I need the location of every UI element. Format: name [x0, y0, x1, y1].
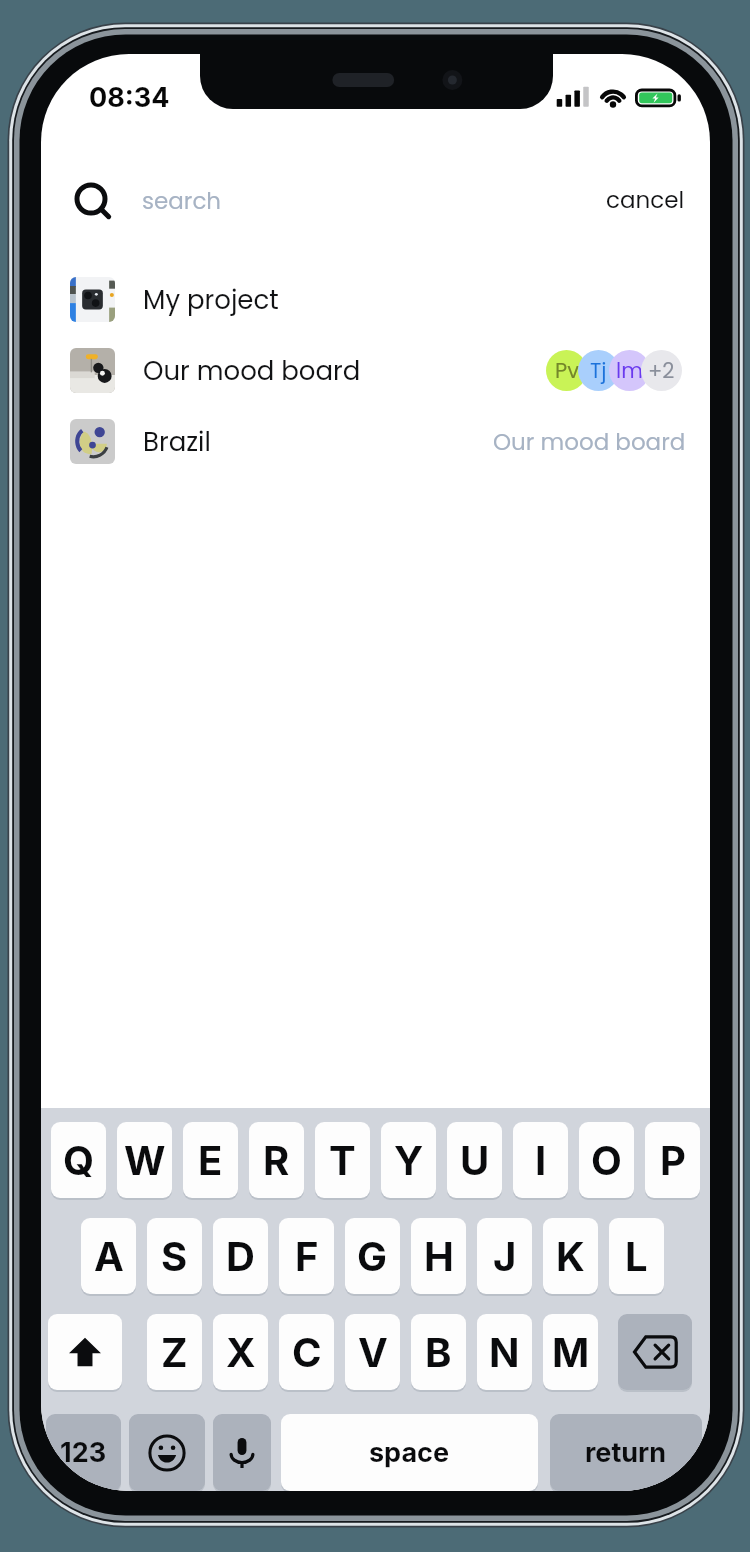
staticText: P: [660, 1136, 686, 1184]
button[interactable]: Dictation: [213, 1414, 271, 1491]
staticText: Y: [394, 1136, 424, 1184]
button[interactable]: Our mood board: [41, 335, 710, 406]
staticText: C: [292, 1328, 322, 1376]
staticText: G: [357, 1232, 388, 1280]
staticText: A: [94, 1232, 124, 1280]
button[interactable]: Tj: [578, 350, 619, 391]
button[interactable]: F: [279, 1218, 334, 1294]
button[interactable]: P: [645, 1122, 700, 1198]
button[interactable]: 123: [46, 1414, 121, 1491]
button[interactable]: Z: [147, 1314, 202, 1390]
staticText: W: [124, 1136, 166, 1184]
staticText: X: [226, 1328, 256, 1376]
button[interactable]: Search: [69, 178, 115, 224]
staticText: Our mood board: [493, 426, 686, 458]
staticText: Brazil: [143, 424, 211, 460]
staticText: V: [358, 1328, 388, 1376]
button[interactable]: V: [345, 1314, 400, 1390]
staticText: Q: [63, 1136, 95, 1184]
button[interactable]: R: [249, 1122, 304, 1198]
button[interactable]: E: [183, 1122, 238, 1198]
staticText: search: [142, 185, 222, 217]
button[interactable]: space: [281, 1414, 538, 1491]
button[interactable]: W: [117, 1122, 172, 1198]
button[interactable]: +2: [641, 350, 682, 391]
staticText: Tj: [590, 356, 607, 385]
staticText: M: [552, 1328, 590, 1376]
staticText: H: [424, 1232, 454, 1280]
button[interactable]: A: [81, 1218, 136, 1294]
button[interactable]: K: [543, 1218, 598, 1294]
button[interactable]: O: [579, 1122, 634, 1198]
button[interactable]: N: [477, 1314, 532, 1390]
button[interactable]: My project: [41, 264, 710, 335]
staticText: I: [535, 1136, 547, 1184]
button[interactable]: B: [411, 1314, 466, 1390]
staticText: E: [198, 1136, 223, 1184]
staticText: L: [625, 1232, 648, 1280]
staticText: cancel: [606, 184, 685, 216]
staticText: return: [585, 1436, 667, 1469]
staticText: 08:34: [89, 81, 170, 113]
staticText: +2: [648, 356, 675, 385]
button[interactable]: T: [315, 1122, 370, 1198]
staticText: F: [295, 1232, 319, 1280]
button[interactable]: G: [345, 1218, 400, 1294]
staticText: My project: [143, 282, 279, 318]
staticText: Our mood board: [143, 353, 361, 389]
staticText: S: [161, 1232, 188, 1280]
button[interactable]: Backspace: [618, 1314, 692, 1390]
button[interactable]: M: [543, 1314, 598, 1390]
button[interactable]: I: [513, 1122, 568, 1198]
button[interactable]: X: [213, 1314, 268, 1390]
button[interactable]: Emoji: [129, 1414, 205, 1491]
staticText: lm: [616, 356, 643, 385]
button[interactable]: lm: [609, 350, 650, 391]
staticText: R: [263, 1136, 290, 1184]
button[interactable]: cancel: [603, 172, 687, 228]
button[interactable]: S: [147, 1218, 202, 1294]
staticText: Z: [161, 1328, 188, 1376]
button[interactable]: return: [550, 1414, 702, 1491]
staticText: space: [369, 1436, 450, 1469]
staticText: Pv: [555, 356, 579, 385]
staticText: 123: [60, 1436, 107, 1469]
staticText: O: [591, 1136, 622, 1184]
button[interactable]: U: [447, 1122, 502, 1198]
button[interactable]: D: [213, 1218, 268, 1294]
staticText: J: [493, 1232, 517, 1280]
staticText: D: [226, 1232, 255, 1280]
button[interactable]: Q: [51, 1122, 106, 1198]
staticText: U: [460, 1136, 490, 1184]
staticText: T: [329, 1136, 356, 1184]
button[interactable]: J: [477, 1218, 532, 1294]
button[interactable]: L: [609, 1218, 664, 1294]
button[interactable]: Shift: [48, 1314, 122, 1390]
button[interactable]: H: [411, 1218, 466, 1294]
button[interactable]: Brazil: [41, 406, 710, 477]
button[interactable]: Pv: [546, 350, 587, 391]
button[interactable]: Y: [381, 1122, 436, 1198]
staticText: N: [489, 1328, 520, 1376]
button[interactable]: C: [279, 1314, 334, 1390]
staticText: K: [556, 1232, 585, 1280]
staticText: B: [425, 1328, 452, 1376]
